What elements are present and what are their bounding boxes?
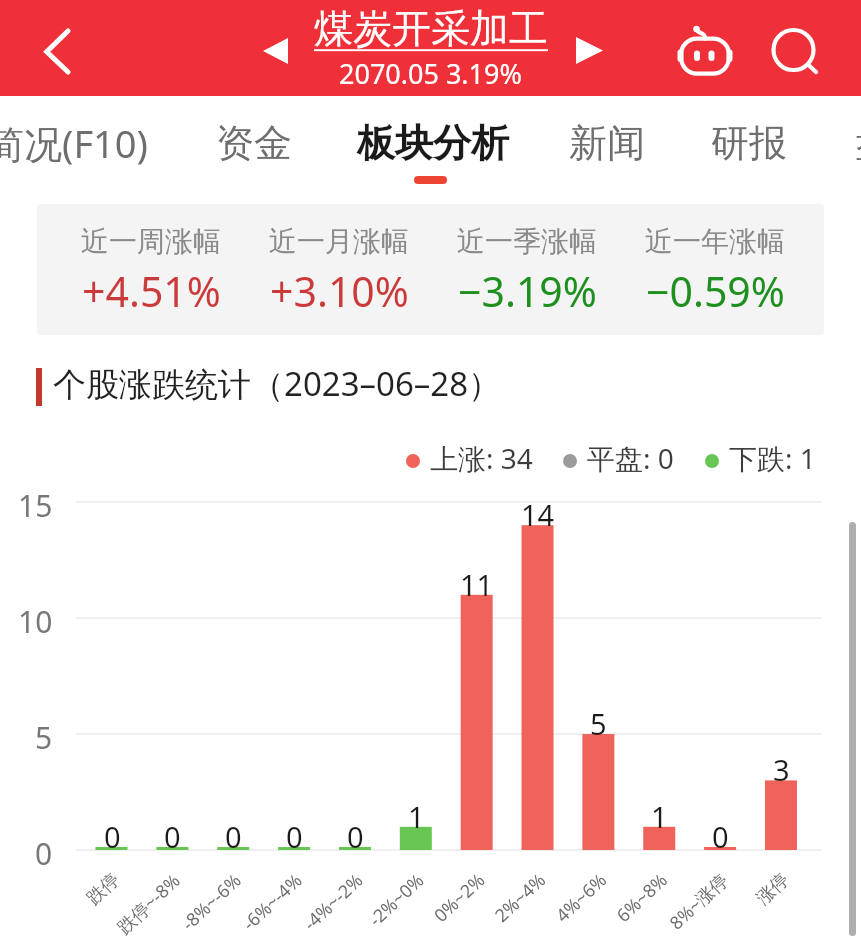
staticText: 14 bbox=[521, 495, 555, 529]
button[interactable]: 下跌: 1 bbox=[705, 443, 816, 479]
staticText: 近一年涨幅 bbox=[645, 224, 785, 259]
staticText: 近一季涨幅 bbox=[457, 224, 597, 259]
staticText: +3.10% bbox=[270, 263, 409, 319]
staticText: 上涨: 34 bbox=[430, 439, 533, 475]
staticText: 新闻 bbox=[569, 119, 645, 167]
staticText: 0 bbox=[164, 817, 181, 851]
staticText: −3.19% bbox=[458, 263, 597, 319]
staticText: 0 bbox=[712, 817, 729, 851]
button[interactable]: AI assistant bbox=[669, 14, 741, 86]
staticText: 3 bbox=[773, 750, 790, 784]
staticText: 平盘: 0 bbox=[587, 439, 674, 475]
staticText: 1 bbox=[651, 797, 668, 831]
staticText: 近一周涨幅 bbox=[81, 224, 221, 259]
staticText: −0.59% bbox=[646, 263, 785, 319]
button[interactable]: Next sector bbox=[558, 20, 618, 80]
staticText: 板块分析 bbox=[357, 119, 509, 167]
staticText: 5 bbox=[35, 717, 53, 758]
staticText: 10 bbox=[18, 601, 53, 642]
button[interactable]: 盘 bbox=[855, 108, 861, 178]
staticText: 0 bbox=[35, 833, 53, 874]
staticText: 近一月涨幅 bbox=[269, 224, 409, 259]
staticText: 5 bbox=[590, 704, 607, 738]
staticText: 0 bbox=[225, 817, 242, 851]
staticText: 0 bbox=[286, 817, 303, 851]
button[interactable]: 上涨: 34 bbox=[406, 443, 533, 479]
staticText: 个股涨跌统计（2023–06–28） bbox=[53, 361, 502, 406]
button[interactable]: 研报 bbox=[711, 108, 787, 178]
button[interactable]: Previous sector bbox=[245, 20, 305, 80]
staticText: 下跌: 1 bbox=[729, 439, 816, 475]
staticText: 简况(F10) bbox=[0, 117, 148, 169]
staticText: 11 bbox=[460, 565, 494, 599]
staticText: 1 bbox=[408, 797, 425, 831]
button[interactable]: 平盘: 0 bbox=[563, 443, 674, 479]
staticText: +4.51% bbox=[82, 263, 221, 319]
staticText: 2070.05 3.19% bbox=[339, 55, 522, 92]
button[interactable]: 简况(F10) bbox=[0, 108, 148, 178]
staticText: 15 bbox=[18, 485, 53, 526]
button[interactable]: 板块分析 bbox=[357, 108, 509, 178]
button[interactable]: Back bbox=[14, 12, 86, 84]
button[interactable]: Search bbox=[761, 18, 825, 82]
button[interactable]: 新闻 bbox=[569, 108, 645, 178]
staticText: 资金 bbox=[216, 119, 292, 167]
staticText: 盘 bbox=[855, 119, 861, 167]
button[interactable]: 资金 bbox=[216, 108, 292, 178]
staticText: 0 bbox=[347, 817, 364, 851]
staticText: 0 bbox=[104, 817, 121, 851]
staticText: 煤炭开采加工 bbox=[314, 4, 548, 53]
staticText: 研报 bbox=[711, 119, 787, 167]
